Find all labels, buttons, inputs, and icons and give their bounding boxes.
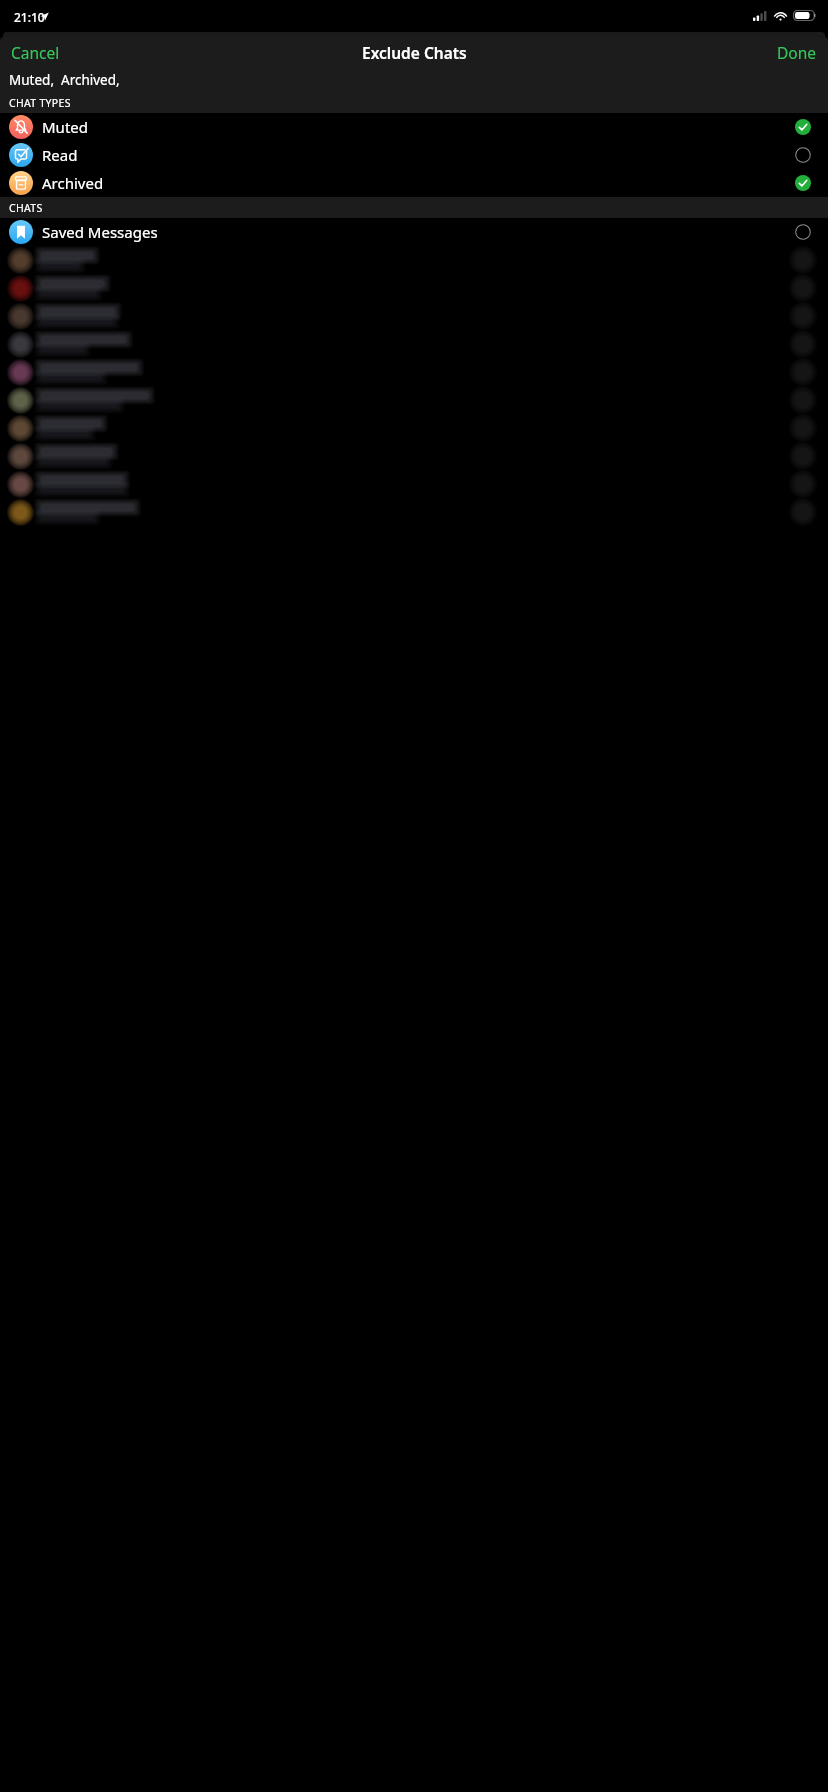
staticText: 21:10 xyxy=(14,9,45,25)
staticText: CHATS xyxy=(9,201,43,215)
button[interactable]: Read xyxy=(0,141,828,169)
button[interactable] xyxy=(0,330,828,358)
staticText: Archived xyxy=(42,173,104,193)
staticText: Saved Messages xyxy=(42,222,158,242)
button[interactable] xyxy=(0,274,828,302)
button[interactable]: Done xyxy=(766,38,828,67)
button[interactable] xyxy=(0,358,828,386)
staticText: Muted, Archived, xyxy=(9,71,120,89)
button[interactable] xyxy=(0,414,828,442)
button[interactable] xyxy=(0,302,828,330)
button[interactable]: Cancel xyxy=(0,38,71,67)
button[interactable]: Muted xyxy=(0,113,828,141)
staticText: Read xyxy=(42,145,78,165)
button[interactable]: Muted, Archived, xyxy=(0,67,828,92)
staticText: Muted xyxy=(42,117,88,137)
staticText: Cancel xyxy=(11,42,60,63)
staticText: CHAT TYPES xyxy=(9,96,71,110)
staticText: Exclude Chats xyxy=(362,42,467,63)
staticText: Done xyxy=(777,42,817,63)
button[interactable]: Archived xyxy=(0,169,828,197)
button[interactable] xyxy=(0,246,828,274)
button[interactable] xyxy=(0,470,828,498)
button[interactable] xyxy=(0,442,828,470)
button[interactable] xyxy=(0,386,828,414)
button[interactable] xyxy=(0,498,828,526)
button[interactable]: Saved Messages xyxy=(0,218,828,246)
